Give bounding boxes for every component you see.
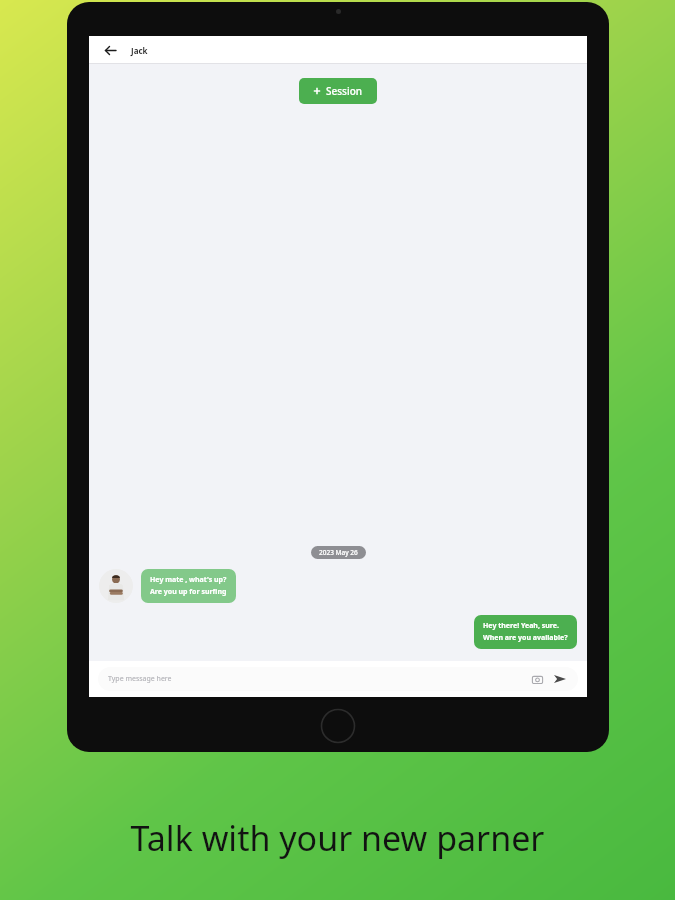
staticText: Talk with your new parner <box>0 815 675 861</box>
staticText: Hey there! Yeah, sure. <box>483 621 559 631</box>
staticText: Hey mate , what's up? <box>150 575 227 585</box>
button[interactable]: Session <box>299 78 377 104</box>
staticText: Jack <box>131 45 148 56</box>
button[interactable]: Attach photo <box>529 671 545 687</box>
staticText: Type message here <box>108 674 172 684</box>
button[interactable]: Send <box>552 671 568 687</box>
staticText: 2023 May 26 <box>319 548 358 557</box>
button[interactable]: Hey mate , what's up? <box>141 569 236 603</box>
staticText: When are you available? <box>483 633 568 643</box>
button[interactable]: Type message here <box>98 667 578 691</box>
button[interactable]: Hey there! Yeah, sure. <box>474 615 577 649</box>
staticText: Session <box>326 84 363 98</box>
staticText: Are you up for surfing <box>150 587 227 597</box>
button[interactable]: Back <box>101 41 119 59</box>
